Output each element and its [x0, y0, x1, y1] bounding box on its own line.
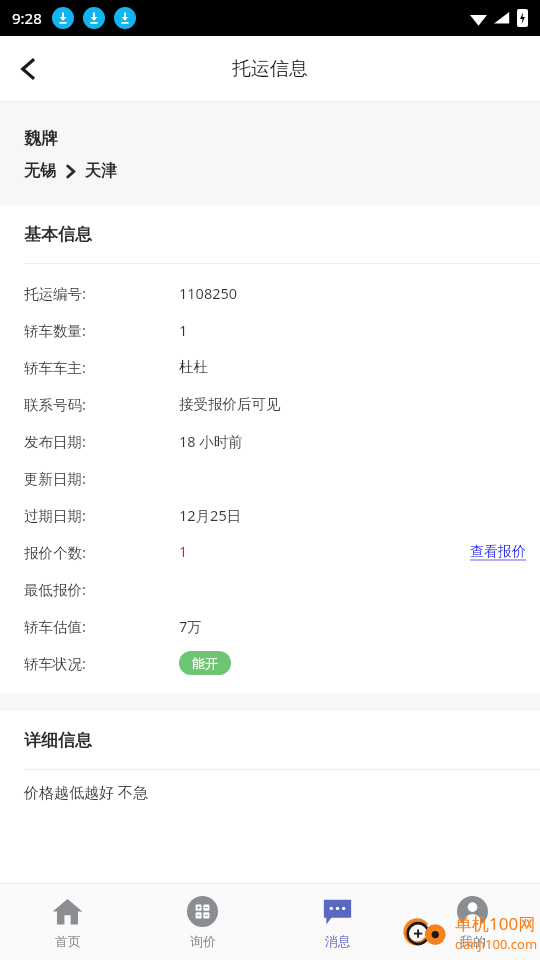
staticText: 18 小时前	[179, 431, 243, 451]
button[interactable]: 消息	[270, 884, 405, 960]
staticText: 单机100网	[455, 912, 536, 935]
button[interactable]: 查看报价	[470, 543, 540, 561]
staticText: 查看报价	[470, 543, 526, 561]
staticText: 天津	[85, 161, 117, 181]
staticText: 接受报价后可见	[179, 395, 281, 413]
staticText: 魏牌	[24, 128, 58, 149]
staticText: 7万	[179, 616, 202, 636]
staticText: 价格越低越好 不急	[24, 782, 148, 802]
staticText: 我的	[460, 933, 486, 949]
staticText: 消息	[325, 933, 351, 949]
staticText: 杜杜	[179, 358, 208, 376]
staticText: 轿车估值:	[24, 616, 86, 636]
staticText: 基本信息	[24, 224, 92, 245]
staticText: 12月25日	[179, 505, 242, 525]
staticText: 过期日期:	[24, 505, 86, 525]
staticText: 1108250	[179, 283, 238, 303]
staticText: 最低报价:	[24, 579, 86, 599]
staticText: 轿车数量:	[24, 320, 86, 340]
staticText: 联系号码:	[24, 394, 86, 414]
staticText: 1	[179, 320, 188, 340]
button[interactable]: 询价	[135, 884, 270, 960]
staticText: 报价个数:	[24, 542, 86, 562]
staticText: 能开	[192, 655, 218, 671]
staticText: 无锡	[24, 161, 56, 181]
staticText: 托运编号:	[24, 283, 86, 303]
staticText: 轿车车主:	[24, 357, 86, 377]
staticText: 询价	[190, 933, 216, 949]
staticText: 更新日期:	[24, 468, 86, 488]
staticText: 托运信息	[232, 57, 308, 81]
button[interactable]: 返回	[0, 41, 56, 97]
button[interactable]: 我的	[405, 884, 540, 960]
staticText: 1	[179, 542, 188, 561]
staticText: 9:28	[12, 8, 42, 28]
staticText: 轿车状况:	[24, 653, 86, 673]
staticText: 发布日期:	[24, 431, 86, 451]
staticText: 详细信息	[24, 730, 92, 751]
button[interactable]: 首页	[0, 884, 135, 960]
staticText: danji100.com	[455, 935, 538, 953]
staticText: 首页	[55, 933, 81, 949]
